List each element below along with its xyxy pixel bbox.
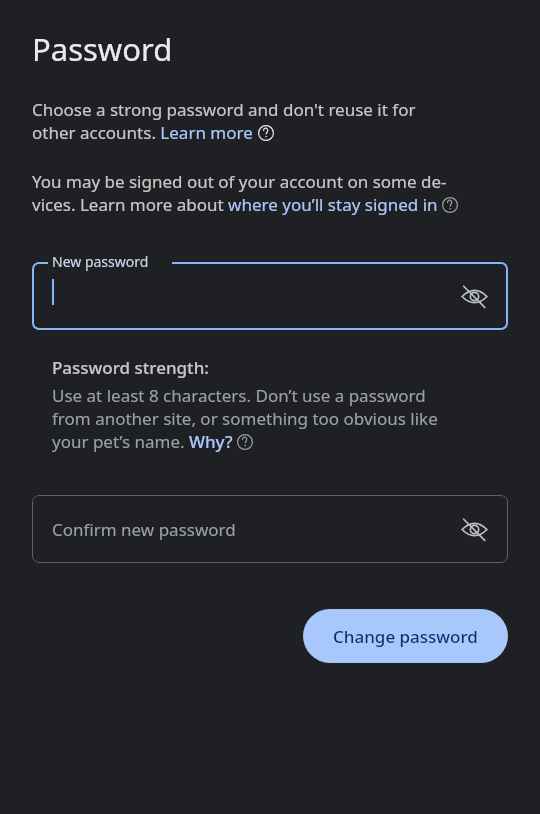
button[interactable]: Show password [458,513,490,545]
button[interactable]: Show password [458,280,490,312]
staticText: Password strength: [52,356,209,379]
staticText: Password [32,28,173,70]
button[interactable]: vices. Learn more about where you’ll sta… [32,193,438,216]
staticText: from another site, or something too obvi… [52,407,438,430]
staticText: Choose a strong password and don't reuse… [32,98,416,121]
button[interactable]: your pet’s name. Why? [52,430,233,453]
button[interactable]: Change password [303,609,508,663]
staticText: Change password [333,625,478,648]
button[interactable]: Confirm new password [32,495,508,563]
staticText: Confirm new password [52,518,236,541]
staticText: New password [52,252,149,271]
staticText: Use at least 8 characters. Don’t use a p… [52,384,426,407]
button[interactable]: other accounts. Learn more [32,121,253,144]
staticText: You may be signed out of your account on… [32,170,447,193]
